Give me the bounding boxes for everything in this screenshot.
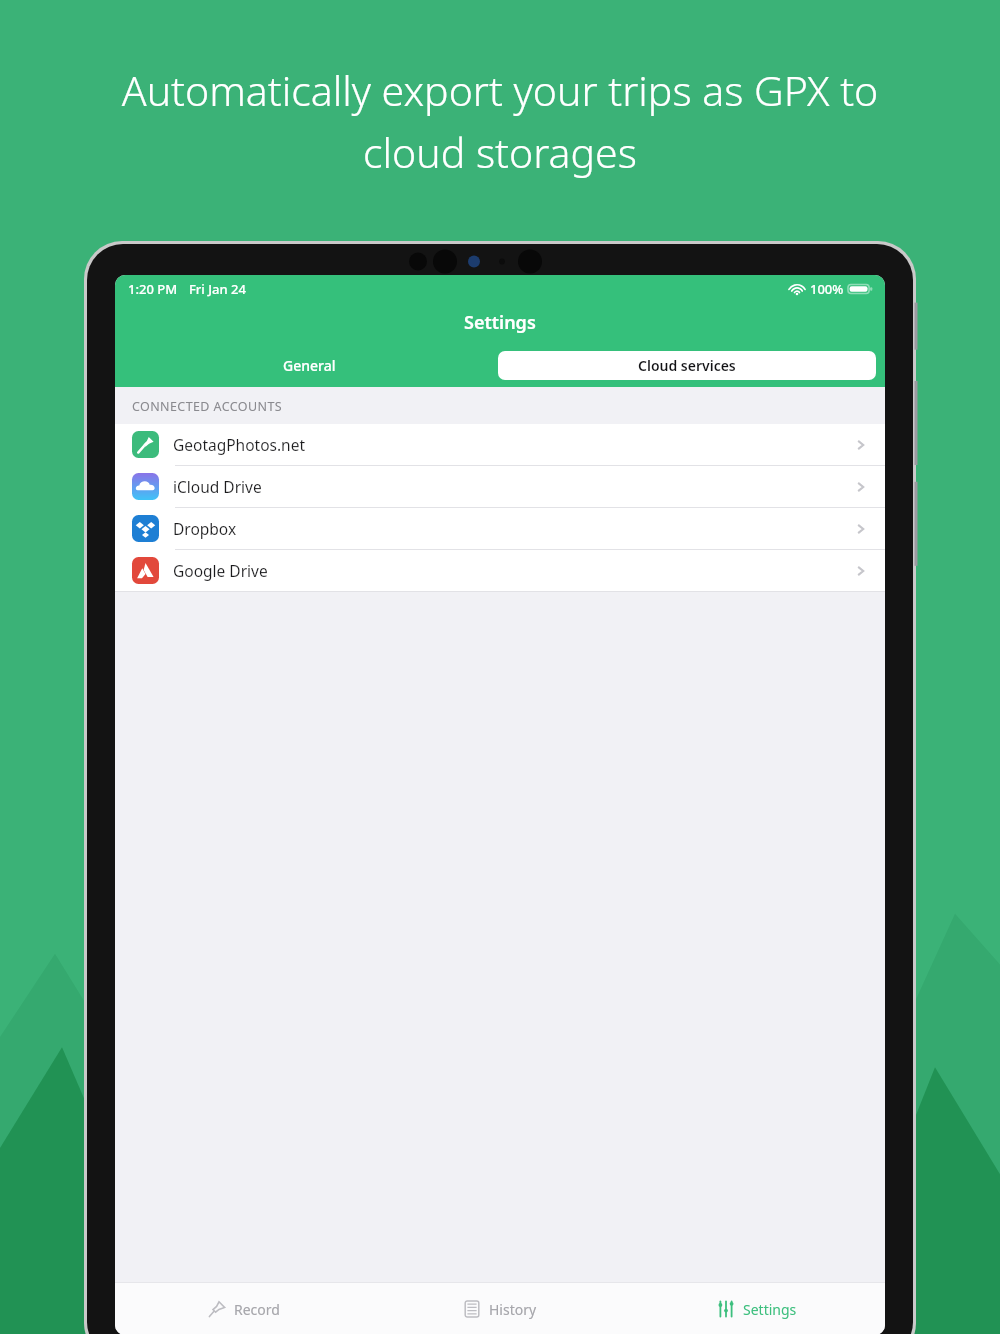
staticText: History — [489, 1300, 537, 1319]
button[interactable]: General — [121, 351, 498, 380]
staticText: GeotagPhotos.net — [173, 434, 306, 455]
staticText: General — [283, 356, 336, 375]
button[interactable]: Dropbox — [115, 508, 885, 549]
button[interactable]: Settings — [628, 1283, 885, 1334]
staticText: Record — [234, 1300, 280, 1319]
staticText: Settings — [464, 310, 536, 335]
staticText: Automatically export your trips as GPX t… — [100, 62, 900, 180]
staticText: 1:20 PM — [128, 280, 178, 298]
staticText: Settings — [743, 1300, 797, 1319]
button[interactable]: GeotagPhotos.net — [115, 424, 885, 465]
button[interactable]: Cloud services — [498, 351, 876, 380]
button[interactable]: iCloud Drive — [115, 466, 885, 507]
staticText: 100% — [810, 280, 844, 298]
staticText: Cloud services — [638, 356, 736, 375]
button[interactable]: History — [371, 1283, 628, 1334]
staticText: iCloud Drive — [173, 476, 262, 497]
button[interactable]: Record — [115, 1283, 371, 1334]
staticText: CONNECTED ACCOUNTS — [132, 398, 282, 415]
button[interactable]: Google Drive — [115, 550, 885, 591]
staticText: Fri Jan 24 — [189, 280, 246, 298]
staticText: Google Drive — [173, 560, 268, 581]
staticText: Dropbox — [173, 518, 237, 539]
